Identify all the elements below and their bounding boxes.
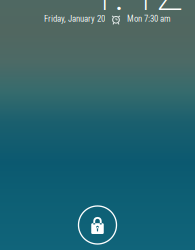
button[interactable]: Unlock [75, 203, 119, 247]
staticText: 4:42 [83, 0, 184, 25]
staticText: Friday, January 20 [44, 13, 105, 24]
staticText: Mon 7:30 am [127, 13, 171, 24]
